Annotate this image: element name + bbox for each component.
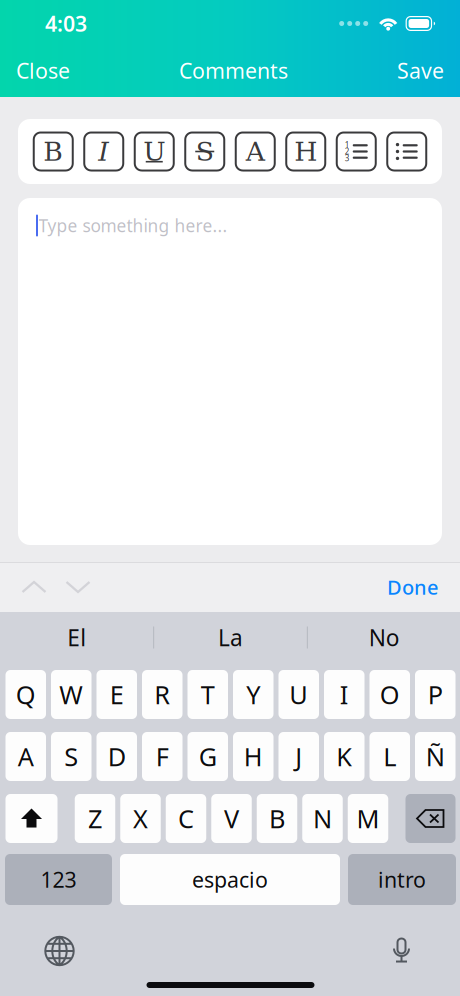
- staticText: U: [143, 136, 165, 167]
- staticText: Close: [16, 56, 70, 85]
- button[interactable]: C: [166, 794, 206, 843]
- button[interactable]: U: [278, 670, 319, 719]
- button[interactable]: F: [142, 732, 182, 781]
- button[interactable]: intro: [348, 854, 456, 905]
- staticText: I: [98, 136, 109, 167]
- button[interactable]: Ñ: [415, 732, 455, 781]
- button[interactable]: G: [187, 732, 228, 781]
- staticText: M: [356, 802, 379, 835]
- staticText: D: [108, 740, 126, 773]
- button[interactable]: H: [233, 732, 273, 781]
- button[interactable]: I: [84, 132, 123, 170]
- button[interactable]: 1: [337, 132, 376, 170]
- staticText: Comments: [179, 56, 288, 85]
- button[interactable]: 123: [5, 854, 112, 905]
- staticText: espacio: [192, 865, 268, 894]
- staticText: B: [43, 136, 63, 167]
- button[interactable]: U: [135, 132, 174, 170]
- staticText: A: [18, 740, 34, 773]
- staticText: 3: [345, 153, 350, 163]
- button[interactable]: Q: [5, 670, 46, 719]
- staticText: A: [246, 136, 265, 167]
- staticText: X: [133, 802, 148, 835]
- staticText: 4:03: [45, 9, 87, 38]
- button[interactable]: V: [211, 794, 252, 843]
- button[interactable]: Change keyboard: [0, 928, 88, 974]
- staticText: G: [199, 740, 217, 773]
- button[interactable]: H: [286, 132, 325, 170]
- staticText: 123: [40, 865, 76, 894]
- button[interactable]: E: [96, 670, 137, 719]
- staticText: Y: [246, 678, 260, 711]
- staticText: La: [218, 622, 243, 652]
- staticText: K: [336, 740, 352, 773]
- staticText: H: [244, 740, 263, 773]
- button[interactable]: K: [324, 732, 364, 781]
- button[interactable]: Y: [233, 670, 273, 719]
- button[interactable]: Close: [0, 48, 86, 92]
- staticText: H: [294, 136, 317, 167]
- staticText: E: [110, 678, 124, 711]
- staticText: T: [201, 678, 215, 711]
- button[interactable]: S: [51, 732, 91, 781]
- button[interactable]: R: [142, 670, 182, 719]
- button[interactable]: No: [308, 611, 460, 664]
- button[interactable]: Next field: [56, 566, 100, 608]
- button[interactable]: D: [96, 732, 137, 781]
- button[interactable]: S: [185, 132, 224, 170]
- staticText: W: [59, 678, 83, 711]
- staticText: Done: [387, 574, 438, 600]
- staticText: Ñ: [426, 740, 445, 773]
- staticText: C: [178, 802, 194, 835]
- staticText: El: [67, 622, 86, 652]
- button[interactable]: Dictation: [372, 928, 460, 974]
- button[interactable]: W: [51, 670, 91, 719]
- staticText: J: [295, 740, 302, 773]
- staticText: Type something here...: [38, 214, 227, 237]
- button[interactable]: X: [120, 794, 161, 843]
- button[interactable]: El: [0, 611, 153, 664]
- staticText: U: [289, 678, 308, 711]
- staticText: B: [269, 802, 285, 835]
- staticText: V: [224, 802, 239, 835]
- staticText: F: [156, 740, 169, 773]
- staticText: 2: [345, 146, 350, 157]
- staticText: O: [380, 678, 400, 711]
- staticText: 1: [345, 139, 350, 150]
- button[interactable]: La: [154, 611, 307, 664]
- button[interactable]: P: [415, 670, 455, 719]
- button[interactable]: O: [369, 670, 410, 719]
- button[interactable]: Done: [365, 566, 460, 608]
- staticText: No: [369, 622, 400, 652]
- button[interactable]: Shift: [5, 794, 57, 843]
- staticText: R: [154, 678, 170, 711]
- button[interactable]: espacio: [120, 854, 340, 905]
- staticText: Q: [16, 678, 36, 711]
- button[interactable]: A: [5, 732, 46, 781]
- staticText: N: [313, 802, 332, 835]
- button[interactable]: B: [34, 132, 73, 170]
- button[interactable]: L: [369, 732, 410, 781]
- button[interactable]: A: [236, 132, 275, 170]
- button[interactable]: B: [257, 794, 297, 843]
- staticText: Z: [88, 802, 102, 835]
- staticText: S: [64, 740, 78, 773]
- staticText: Save: [397, 56, 444, 85]
- button[interactable]: I: [324, 670, 364, 719]
- button[interactable]: Save: [381, 48, 460, 92]
- button[interactable]: Previous field: [0, 566, 56, 608]
- button[interactable]: Delete: [405, 794, 455, 843]
- button[interactable]: N: [302, 794, 343, 843]
- staticText: P: [428, 678, 443, 711]
- staticText: I: [340, 678, 349, 711]
- button[interactable]: [387, 132, 426, 170]
- staticText: S: [196, 136, 214, 167]
- staticText: intro: [378, 865, 426, 894]
- button[interactable]: Z: [75, 794, 115, 843]
- button[interactable]: J: [278, 732, 319, 781]
- button[interactable]: T: [187, 670, 228, 719]
- button[interactable]: M: [348, 794, 388, 843]
- staticText: L: [383, 740, 396, 773]
